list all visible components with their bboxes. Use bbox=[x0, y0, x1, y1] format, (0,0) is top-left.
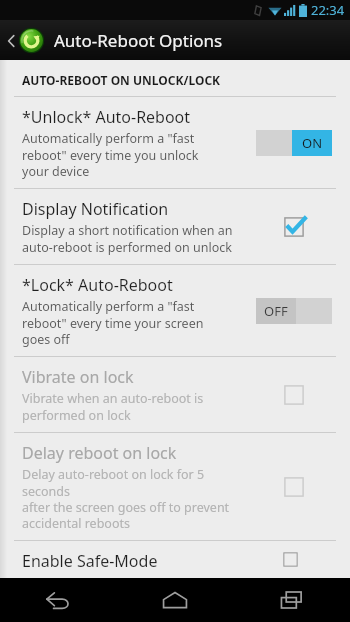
button[interactable]: Unchecked bbox=[279, 380, 309, 410]
staticText: AUTO-REBOOT ON UNLOCK/LOCK bbox=[22, 72, 221, 88]
button[interactable]: Enable Safe-Mode bbox=[0, 541, 350, 578]
staticText: *Unlock* Auto-Reboot bbox=[22, 106, 191, 128]
staticText: 22:34 bbox=[311, 1, 345, 19]
staticText: *Lock* Auto-Reboot bbox=[22, 274, 173, 296]
button[interactable]: Back bbox=[0, 578, 116, 622]
staticText: Auto-Reboot Options bbox=[54, 29, 223, 52]
staticText: ON bbox=[302, 134, 323, 152]
staticText: Automatically perform a "fast reboot" ev… bbox=[22, 130, 199, 179]
staticText: Automatically perform a "fast reboot" ev… bbox=[22, 298, 204, 347]
staticText: Enable Safe-Mode bbox=[22, 550, 158, 569]
button[interactable]: Switch off bbox=[256, 298, 332, 324]
button[interactable]: *Unlock* Auto-Reboot bbox=[0, 97, 350, 188]
staticText: Display a short notification when an aut… bbox=[22, 222, 233, 255]
staticText: Delay auto-reboot on lock for 5 seconds … bbox=[22, 466, 244, 531]
button[interactable]: Unchecked bbox=[279, 472, 309, 502]
other: Back bbox=[6, 32, 16, 50]
button[interactable]: Recent apps bbox=[233, 578, 350, 622]
button[interactable]: Display Notification bbox=[0, 189, 350, 264]
button[interactable]: Back bbox=[0, 24, 233, 57]
staticText: OFF bbox=[264, 302, 288, 320]
button[interactable]: Unchecked bbox=[279, 550, 309, 569]
button[interactable]: Delay reboot on lock bbox=[0, 433, 350, 540]
button[interactable]: Switch on bbox=[256, 130, 332, 156]
button[interactable]: Checked bbox=[279, 212, 309, 242]
button[interactable]: Home bbox=[116, 578, 233, 622]
staticText: Delay reboot on lock bbox=[22, 442, 177, 464]
staticText: Vibrate when an auto-reboot is performed… bbox=[22, 390, 204, 423]
staticText: Vibrate on lock bbox=[22, 366, 134, 388]
staticText: Display Notification bbox=[22, 198, 169, 220]
button[interactable]: Vibrate on lock bbox=[0, 357, 350, 432]
button[interactable]: *Lock* Auto-Reboot bbox=[0, 265, 350, 356]
